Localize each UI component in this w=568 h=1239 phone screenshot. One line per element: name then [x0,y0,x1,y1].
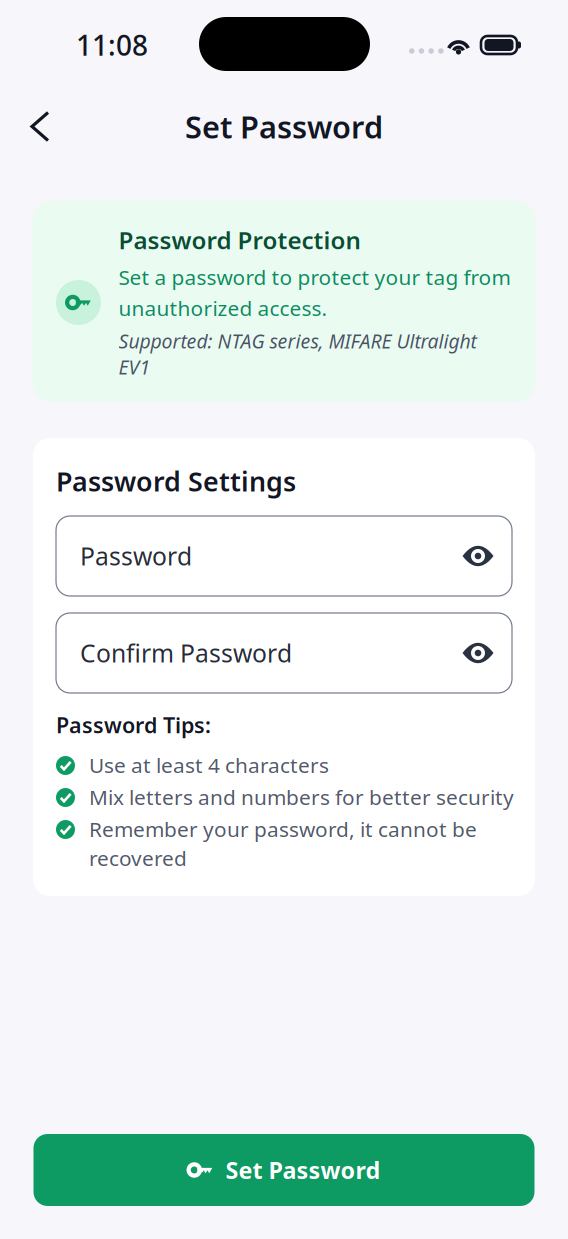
staticText: Supported: NTAG series, MIFARE Ultraligh… [118,328,476,354]
staticText: recovered [89,844,187,872]
button[interactable]: Back [16,102,64,150]
staticText: Set a password to protect your tag from [118,263,510,291]
staticText: Password [80,540,192,572]
staticText: Confirm Password [80,637,292,669]
staticText: Password Protection [118,224,360,256]
button[interactable]: Set Password [33,1134,534,1206]
staticText: Mix letters and numbers for better secur… [89,783,514,811]
staticText: Use at least 4 characters [89,751,329,779]
button[interactable]: Show Confirm Password [461,636,495,670]
staticText: Remember your password, it cannot be [89,815,477,843]
staticText: Password Settings [56,463,296,499]
staticText: 11:08 [76,26,148,64]
staticText: Set Password [225,1154,380,1185]
staticText: unauthorized access. [118,294,327,322]
staticText: Set Password [185,106,383,147]
staticText: EV1 [118,354,150,380]
staticText: Password Tips: [56,711,211,739]
button[interactable]: Show Password [461,539,495,573]
